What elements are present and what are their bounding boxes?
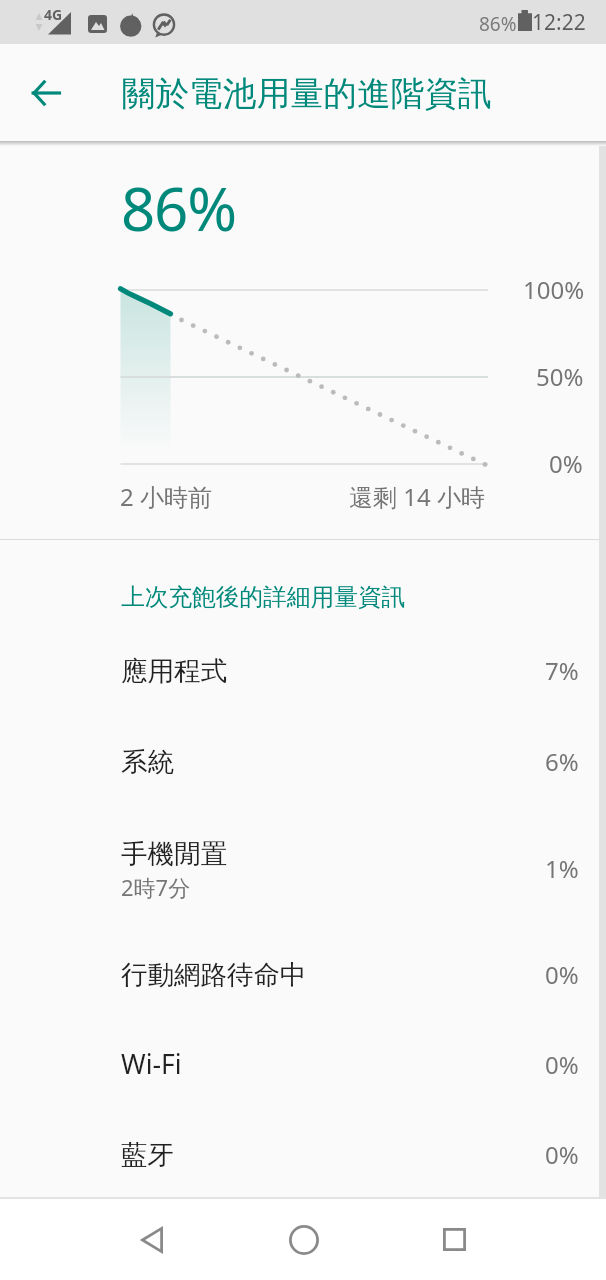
- staticText: 86%: [479, 11, 517, 37]
- staticText: 12:22: [532, 8, 586, 37]
- staticText: 系統: [121, 745, 174, 778]
- button[interactable]: Back: [16, 63, 76, 123]
- button[interactable]: 手機閒置: [0, 807, 606, 929]
- staticText: 手機閒置: [121, 837, 227, 870]
- staticText: 關於電池用量的進階資訊: [122, 73, 492, 115]
- staticText: 1%: [545, 852, 579, 885]
- staticText: Wi-Fi: [121, 1046, 182, 1082]
- staticText: 0%: [549, 447, 583, 480]
- button[interactable]: 應用程式: [0, 625, 606, 716]
- button[interactable]: Home: [263, 1199, 344, 1280]
- button[interactable]: Recents: [414, 1199, 495, 1280]
- staticText: 應用程式: [121, 654, 227, 687]
- staticText: 50%: [536, 360, 584, 393]
- staticText: 7%: [545, 654, 579, 687]
- button[interactable]: Back: [111, 1199, 192, 1280]
- staticText: 0%: [545, 1048, 579, 1081]
- staticText: 6%: [545, 745, 579, 778]
- staticText: 還剩 14 小時: [349, 480, 485, 513]
- staticText: 4G: [44, 5, 63, 24]
- button[interactable]: 藍牙: [0, 1109, 606, 1200]
- staticText: 藍牙: [121, 1138, 174, 1171]
- staticText: 2 小時前: [120, 480, 212, 513]
- staticText: 0%: [545, 1138, 579, 1171]
- button[interactable]: 系統: [0, 716, 606, 807]
- staticText: 100%: [523, 273, 585, 306]
- button[interactable]: Wi-Fi: [0, 1019, 606, 1109]
- button[interactable]: 行動網路待命中: [0, 929, 606, 1019]
- staticText: 0%: [545, 958, 579, 991]
- staticText: 86%: [121, 167, 236, 249]
- staticText: 行動網路待命中: [121, 958, 307, 991]
- staticText: 2時7分: [121, 872, 191, 902]
- staticText: 上次充飽後的詳細用量資訊: [121, 582, 406, 612]
